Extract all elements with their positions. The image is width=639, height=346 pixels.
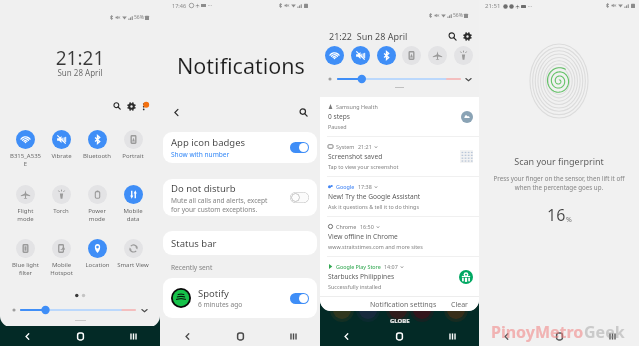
staticText: Press your finger on the sensor, then li… <box>479 174 639 192</box>
staticText: 21:21 <box>0 45 160 71</box>
button[interactable]: Settings <box>124 99 138 113</box>
staticText: 17:46 <box>172 2 187 9</box>
staticText: Chrome <box>336 223 357 230</box>
button[interactable]: Home <box>214 326 267 346</box>
staticText: System <box>336 143 355 150</box>
button[interactable]: More options <box>138 99 152 113</box>
staticText: 16:50 <box>360 223 374 230</box>
staticText: 17:38 <box>358 183 372 190</box>
staticText: ··· <box>528 3 533 10</box>
staticText: Blue light filter <box>12 261 39 277</box>
button[interactable]: Google Play Store <box>328 257 473 296</box>
button[interactable]: Search <box>295 104 311 120</box>
staticText: Clear <box>451 300 468 308</box>
staticText: Mobile Hotspot <box>50 261 73 277</box>
button[interactable]: Spotify <box>163 278 317 318</box>
staticText: B315_A535 E <box>10 152 41 168</box>
staticText: www.straitstimes.com and more sites <box>328 243 423 250</box>
button[interactable]: Clear <box>449 297 470 311</box>
button[interactable]: Home <box>54 326 107 346</box>
button[interactable]: Back <box>479 326 533 346</box>
staticText: Recently sent <box>171 263 213 272</box>
staticText: Sun 28 April <box>0 67 160 78</box>
button[interactable]: Samsung Health <box>328 97 473 136</box>
staticText: 21:22 Sun 28 April <box>329 30 408 42</box>
button[interactable] <box>290 293 309 304</box>
staticText: Notifications <box>177 51 305 80</box>
staticText: Mobile data <box>123 207 143 223</box>
staticText: Geek <box>584 321 625 343</box>
staticText: Paused <box>328 123 347 130</box>
button[interactable]: System <box>328 137 473 176</box>
button[interactable]: Mobile Hotspot <box>43 239 79 277</box>
button[interactable]: Settings <box>460 29 474 43</box>
staticText: % <box>566 215 572 225</box>
button[interactable]: Torch <box>43 185 79 215</box>
staticText: 6 minutes ago <box>198 300 243 309</box>
button[interactable]: Do not disturb <box>163 179 317 216</box>
button[interactable]: Blue light filter <box>7 239 43 277</box>
button[interactable]: Back <box>168 104 184 120</box>
button[interactable]: Quick toggle <box>428 46 447 65</box>
staticText: 16 <box>547 204 566 226</box>
button[interactable]: Recents <box>586 326 639 346</box>
staticText: Spotify <box>198 287 229 300</box>
staticText: Power mode <box>88 207 106 223</box>
staticText: 21:51 <box>485 2 501 10</box>
button[interactable]: Recents <box>426 326 479 346</box>
staticText: Vibrate <box>51 152 72 160</box>
button[interactable]: Search <box>445 29 459 43</box>
button[interactable]: App icon badges <box>163 132 317 163</box>
button[interactable] <box>290 142 309 153</box>
button[interactable]: Home <box>533 326 586 346</box>
staticText: PinoyMetro <box>491 321 584 343</box>
staticText: Location <box>85 261 110 269</box>
button[interactable]: Search <box>110 99 124 113</box>
button[interactable]: Location <box>79 239 115 269</box>
staticText: Status bar <box>171 237 217 250</box>
button[interactable]: Smart View <box>115 239 151 269</box>
staticText: 56% <box>453 12 463 19</box>
button[interactable]: Flight mode <box>7 185 43 223</box>
button[interactable]: Quick toggle <box>325 46 344 65</box>
button[interactable]: Back <box>320 326 373 346</box>
button[interactable]: Home <box>373 326 426 346</box>
staticText: Tap to view your screenshot <box>328 163 399 170</box>
button[interactable]: Status bar <box>163 231 317 255</box>
staticText: Notification settings <box>370 300 437 308</box>
staticText: Starbucks Philippines <box>328 272 395 281</box>
button[interactable]: Power mode <box>79 185 115 223</box>
staticText: Mute all calls and alerts, except for yo… <box>171 196 268 214</box>
staticText: Flight mode <box>17 207 34 223</box>
staticText: Samsung Health <box>336 103 378 110</box>
button[interactable]: Recents <box>107 326 160 346</box>
staticText: New! Try the Google Assistant <box>328 192 421 201</box>
button[interactable] <box>290 192 309 203</box>
button[interactable]: Mobile data <box>115 185 151 223</box>
button[interactable]: Vibrate <box>43 130 79 160</box>
button[interactable]: Recents <box>267 326 320 346</box>
button[interactable]: Google <box>328 177 473 216</box>
button[interactable]: Back <box>0 326 54 346</box>
button[interactable]: Chrome <box>328 217 473 256</box>
button[interactable]: Back <box>160 326 214 346</box>
staticText: Portrait <box>122 152 144 160</box>
staticText: GLOBE <box>390 317 410 325</box>
button[interactable]: Bluetooth <box>79 130 115 160</box>
staticText: 56% <box>134 14 144 21</box>
button[interactable]: Notification settings <box>368 297 439 311</box>
staticText: Show with number <box>171 150 230 159</box>
button[interactable]: B315_A535 E <box>7 130 43 168</box>
button[interactable]: Quick toggle <box>454 46 473 65</box>
button[interactable]: Quick toggle <box>402 46 421 65</box>
staticText: App icon badges <box>171 136 246 149</box>
staticText: Google <box>336 183 355 190</box>
staticText: View offline in Chrome <box>328 232 398 241</box>
button[interactable]: Expand <box>140 306 149 315</box>
button[interactable]: Quick toggle <box>351 46 370 65</box>
button[interactable]: Expand <box>464 75 473 84</box>
staticText: Ask it questions & tell it to do things <box>328 203 419 210</box>
button[interactable]: Quick toggle <box>377 46 396 65</box>
button[interactable]: Portrait <box>115 130 151 160</box>
staticText: Torch <box>53 207 69 215</box>
